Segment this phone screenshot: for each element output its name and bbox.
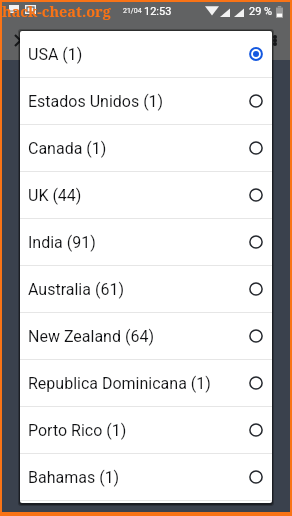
button[interactable]: Porto Rico (1) bbox=[20, 407, 272, 453]
staticText: 21/04 bbox=[123, 7, 142, 15]
button[interactable]: More options bbox=[263, 28, 287, 52]
staticText: UK (44) bbox=[28, 186, 82, 205]
staticText: New Zealand (64) bbox=[28, 327, 154, 346]
button[interactable]: India (91) bbox=[20, 219, 272, 265]
staticText: Bahamas (1) bbox=[28, 468, 120, 487]
button[interactable]: UK (44) bbox=[20, 172, 272, 218]
button[interactable]: Australia (61) bbox=[20, 266, 272, 312]
staticText: Australia (61) bbox=[28, 280, 124, 299]
button[interactable]: Estados Unidos (1) bbox=[20, 78, 272, 124]
button[interactable]: New Zealand (64) bbox=[20, 313, 272, 359]
staticText: hack-cheat.org bbox=[2, 1, 111, 21]
staticText: 12:53 bbox=[144, 5, 172, 18]
button[interactable]: Canada (1) bbox=[20, 125, 272, 171]
staticText: India (91) bbox=[28, 233, 96, 252]
button[interactable]: Bahamas (1) bbox=[20, 454, 272, 500]
staticText: 29 % bbox=[249, 5, 273, 18]
staticText: Porto Rico (1) bbox=[28, 421, 127, 440]
button[interactable]: USA (1) bbox=[20, 31, 272, 77]
staticText: Republica Dominicana (1) bbox=[28, 374, 211, 393]
staticText: Canada (1) bbox=[28, 139, 107, 158]
staticText: USA (1) bbox=[28, 45, 83, 64]
staticText: Estados Unidos (1) bbox=[28, 92, 164, 111]
button[interactable]: Republica Dominicana (1) bbox=[20, 360, 272, 406]
button[interactable]: Close bbox=[7, 27, 33, 53]
